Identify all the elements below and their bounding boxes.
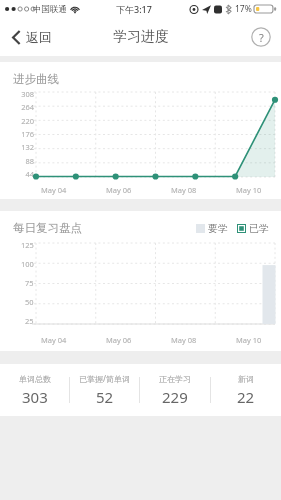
staticText: 进步曲线: [13, 72, 59, 86]
button[interactable]: 返回: [8, 23, 56, 51]
staticText: 52: [96, 387, 114, 407]
staticText: 303: [22, 387, 48, 407]
staticText: 已掌握/简单词: [79, 373, 130, 384]
staticText: 正在学习: [159, 374, 191, 384]
staticText: 学习进度: [113, 28, 169, 46]
staticText: 每日复习盘点: [13, 221, 82, 235]
button[interactable]: 要学: [196, 222, 228, 235]
staticText: 176: [21, 129, 34, 139]
staticText: 已学: [249, 222, 269, 235]
staticText: 50: [25, 297, 34, 307]
staticText: May 04: [41, 185, 67, 195]
staticText: 308: [21, 89, 34, 99]
staticText: 44: [25, 169, 34, 179]
staticText: May 10: [236, 185, 262, 195]
button[interactable]: 新词: [211, 364, 281, 416]
staticText: 22: [237, 387, 255, 407]
staticText: 100: [21, 259, 34, 269]
staticText: ?: [259, 30, 264, 45]
staticText: May 06: [106, 185, 132, 195]
staticText: 返回: [26, 29, 52, 45]
staticText: 125: [21, 240, 34, 250]
staticText: 220: [21, 116, 34, 126]
staticText: May 04: [41, 335, 67, 345]
button[interactable]: 正在学习: [140, 364, 210, 416]
staticText: 229: [162, 387, 188, 407]
staticText: May 08: [171, 185, 197, 195]
button[interactable]: 帮助: [251, 27, 271, 47]
button[interactable]: 已掌握/简单词: [70, 364, 139, 416]
staticText: 要学: [208, 222, 228, 235]
staticText: 88: [25, 156, 34, 166]
staticText: 264: [21, 102, 34, 112]
staticText: 下午3:17: [116, 3, 152, 15]
staticText: 新词: [238, 374, 254, 384]
staticText: 单词总数: [19, 374, 51, 384]
staticText: May 10: [236, 335, 262, 345]
staticText: 17%: [235, 3, 252, 15]
staticText: May 06: [106, 335, 132, 345]
staticText: 132: [21, 142, 34, 152]
staticText: 25: [25, 316, 34, 326]
staticText: 中国联通: [33, 4, 67, 15]
button[interactable]: 单词总数: [0, 364, 69, 416]
staticText: 75: [25, 278, 34, 288]
button[interactable]: 已学: [237, 222, 269, 235]
staticText: May 08: [171, 335, 197, 345]
